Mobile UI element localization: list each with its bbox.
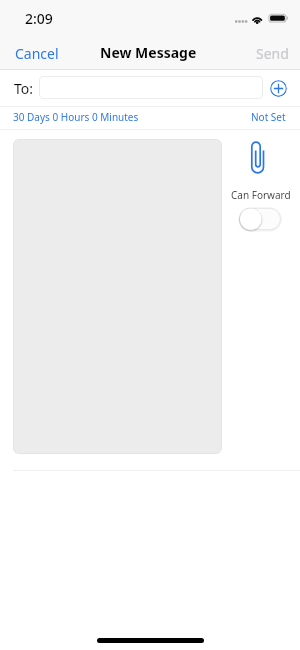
button[interactable]: Add recipient (270, 80, 287, 97)
button[interactable]: 30 Days 0 Hours 0 Minutes (8, 108, 144, 126)
staticText: New Message (100, 43, 197, 62)
button[interactable] (39, 76, 263, 99)
button[interactable]: Attach file (250, 141, 265, 174)
staticText: 2:09 (25, 9, 53, 28)
button[interactable]: Send (248, 40, 296, 67)
staticText: Can Forward (231, 188, 291, 202)
button[interactable]: Not Set (246, 108, 291, 126)
button[interactable]: Cancel (8, 40, 67, 67)
button[interactable]: Can Forward toggle (237, 206, 283, 232)
staticText: To: (14, 79, 34, 98)
